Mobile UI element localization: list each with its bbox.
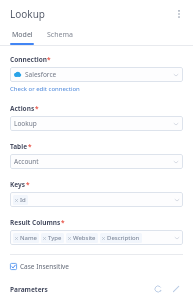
button[interactable]: Description [100, 233, 142, 243]
staticText: * [28, 142, 32, 151]
staticText: * [47, 55, 51, 64]
staticText: Parameters [10, 285, 48, 294]
staticText: Type [48, 234, 62, 242]
staticText: Description [107, 234, 140, 242]
staticText: Name [20, 234, 37, 242]
staticText: Schema [47, 30, 73, 40]
staticText: Model [12, 30, 33, 40]
staticText: * [35, 104, 39, 113]
button[interactable]: Model [10, 30, 34, 45]
staticText: Salesforce [25, 70, 173, 79]
button[interactable]: Name [13, 233, 39, 243]
button[interactable]: Id [13, 195, 28, 205]
button[interactable]: Website [66, 233, 98, 243]
staticText: Id [20, 196, 26, 204]
button[interactable]: Type [41, 233, 64, 243]
button[interactable]: Check or edit connection [10, 85, 80, 93]
staticText: * [61, 218, 65, 227]
button[interactable]: Edit parameters [169, 282, 183, 296]
button[interactable]: Name [10, 230, 183, 245]
staticText: Connection [10, 55, 47, 64]
button[interactable]: Refresh parameters [151, 282, 165, 296]
button[interactable]: Account [10, 154, 183, 169]
staticText: Lookup [10, 7, 46, 21]
staticText: Account [14, 157, 173, 166]
staticText: Case Insensitive [20, 262, 70, 271]
button[interactable]: More options [170, 5, 188, 23]
button[interactable]: Case Insensitive [10, 262, 70, 271]
staticText: * [26, 180, 30, 189]
button[interactable]: Schema [46, 30, 74, 45]
staticText: Lookup [14, 119, 173, 128]
staticText: Actions [10, 104, 35, 113]
staticText: Website [73, 234, 96, 242]
staticText: Result Columns [10, 218, 61, 227]
button[interactable]: Id [10, 192, 183, 207]
staticText: Table [10, 142, 28, 151]
button[interactable]: Salesforce [10, 67, 183, 82]
staticText: Keys [10, 180, 26, 189]
button[interactable]: Lookup [10, 116, 183, 131]
